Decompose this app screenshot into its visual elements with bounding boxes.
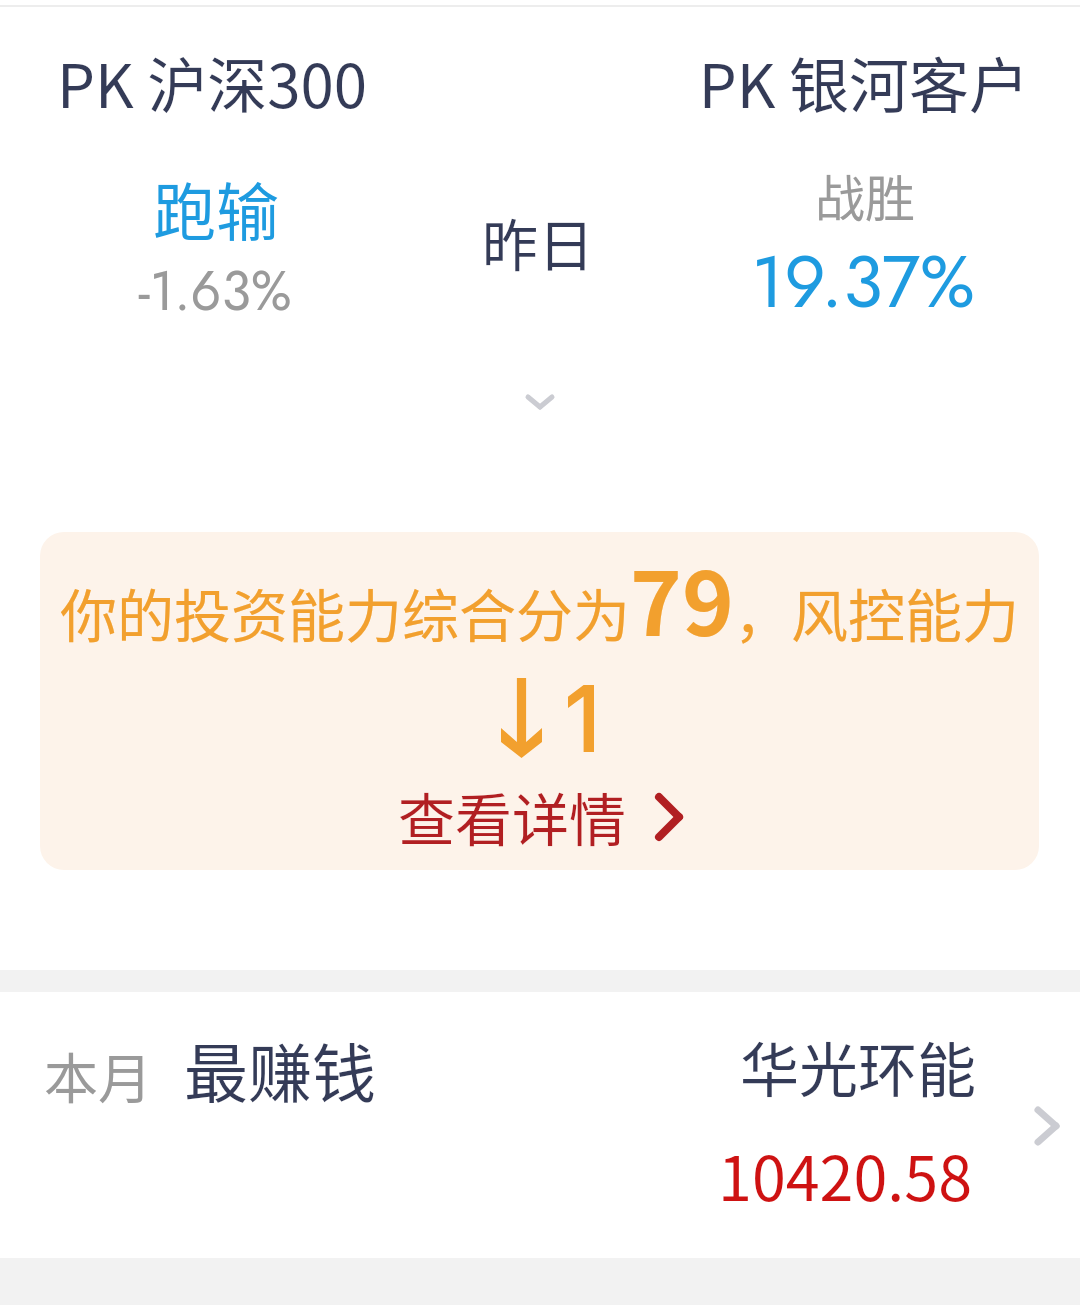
staticText: 昨日 <box>478 201 598 282</box>
staticText: -1.63% <box>82 252 348 330</box>
staticText: 79 <box>630 534 734 661</box>
staticText: 你的投资能力综合分为 <box>60 571 630 654</box>
button[interactable]: PK 银河客户 <box>620 20 1060 330</box>
button[interactable]: 查看详情 <box>398 775 682 858</box>
staticText: 10420.58 <box>600 1130 972 1218</box>
button[interactable]: 你的投资能力综合分为 <box>40 532 1039 870</box>
button[interactable]: PK 沪深300 <box>20 20 420 330</box>
button[interactable]: Expand details <box>470 362 610 442</box>
staticText: ，风控能力 <box>734 571 1019 654</box>
staticText: 查看详情 <box>398 775 626 858</box>
staticText: 跑输 <box>86 162 346 253</box>
staticText: 华光环能 <box>600 1024 976 1109</box>
staticText: PK 沪深300 <box>57 38 368 125</box>
staticText: 最赚钱 <box>184 1023 376 1116</box>
staticText: 战胜 <box>735 159 995 231</box>
staticText: 19.37% <box>730 229 996 334</box>
button[interactable]: 本月 <box>0 992 1080 1257</box>
staticText: PK 银河客户 <box>650 38 1029 125</box>
other: Open details <box>1035 1107 1059 1145</box>
staticText: 本月 <box>44 1036 152 1114</box>
